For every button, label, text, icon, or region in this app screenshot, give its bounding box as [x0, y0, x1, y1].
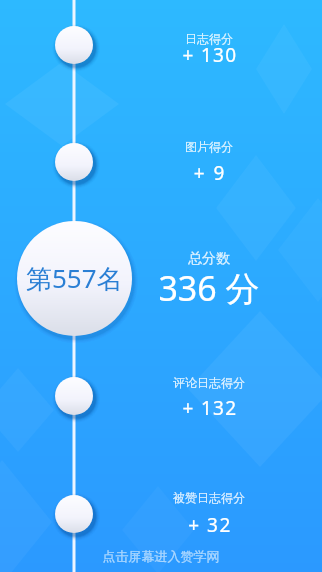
staticText: 336 分: [129, 265, 289, 325]
staticText: + 9: [130, 160, 290, 220]
staticText: 评论日志得分: [129, 375, 289, 405]
staticText: 图片得分: [129, 139, 289, 169]
staticText: + 132: [130, 395, 290, 455]
button[interactable]: [55, 495, 93, 533]
staticText: + 32: [130, 512, 290, 572]
staticText: 总分数: [129, 250, 289, 280]
button[interactable]: [55, 26, 93, 64]
staticText: 点击屏幕进入赞学网: [0, 548, 322, 572]
button[interactable]: 第557名: [0, 0, 322, 572]
staticText: 日志得分: [129, 31, 289, 61]
button[interactable]: 点击屏幕进入赞学网: [0, 548, 322, 572]
staticText: 第557名: [26, 260, 123, 296]
button[interactable]: [55, 143, 93, 181]
button[interactable]: 第557名: [17, 221, 132, 336]
staticText: + 130: [130, 42, 290, 102]
staticText: 被赞日志得分: [129, 490, 289, 520]
button[interactable]: [55, 377, 93, 415]
